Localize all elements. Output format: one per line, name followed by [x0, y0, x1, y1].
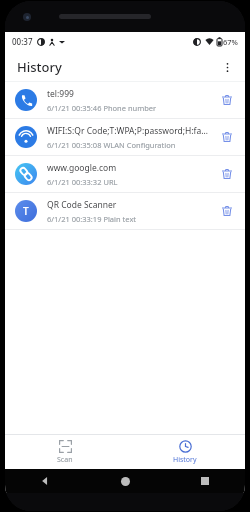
button[interactable]: www.google.com [5, 156, 245, 193]
button[interactable]: History [125, 435, 245, 469]
staticText: QR Code Scanner [47, 199, 117, 211]
button[interactable]: Delete [215, 125, 239, 149]
staticText: History [17, 58, 62, 76]
staticText: 6/1/21 00:35:46 Phone number [47, 103, 157, 113]
button[interactable]: More options [215, 55, 239, 79]
staticText: tel:999 [47, 88, 74, 100]
staticText: History [173, 455, 197, 465]
staticText: WIFI:S:Qr Code;T:WPA;P:password;H:fal… [47, 125, 209, 137]
button[interactable]: Scan [5, 435, 125, 469]
staticText: 67% [223, 37, 238, 47]
button[interactable]: Back [35, 471, 55, 491]
staticText: 00:37 [12, 36, 33, 47]
staticText: www.google.com [47, 162, 117, 174]
button[interactable]: WIFI:S:Qr Code;T:WPA;P:password;H:fal… [5, 119, 245, 156]
button[interactable]: Home [115, 471, 135, 491]
button[interactable]: tel:999 [5, 82, 245, 119]
button[interactable]: Recents [195, 471, 215, 491]
button[interactable]: Delete [215, 88, 239, 112]
button[interactable]: Delete [215, 199, 239, 223]
staticText: 6/1/21 00:33:32 URL [47, 177, 118, 187]
staticText: 6/1/21 00:33:19 Plain text [47, 214, 137, 224]
button[interactable]: Delete [215, 162, 239, 186]
staticText: T [23, 204, 29, 218]
button[interactable]: T [5, 193, 245, 230]
staticText: Scan [57, 455, 73, 465]
staticText: 6/1/21 00:35:08 WLAN Configuration [47, 140, 176, 150]
